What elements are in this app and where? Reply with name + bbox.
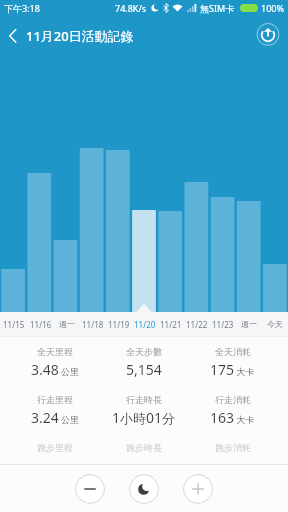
- button[interactable]: 週一: [236, 319, 262, 329]
- button[interactable]: 全天步數: [99, 337, 188, 379]
- button[interactable]: 11/22: [184, 319, 210, 330]
- button[interactable]: 週一: [54, 319, 80, 329]
- button[interactable]: 11/23: [210, 319, 236, 330]
- staticText: 163 大卡: [210, 408, 255, 427]
- button[interactable]: 11/21: [158, 319, 184, 330]
- staticText: 11/18: [82, 319, 104, 330]
- staticText: 週一: [59, 319, 75, 329]
- staticText: 全天里程: [37, 346, 73, 357]
- staticText: 74.8K/s: [115, 2, 147, 14]
- staticText: 3.24 公里: [31, 408, 80, 427]
- staticText: 跑步時長: [126, 442, 162, 453]
- button[interactable]: 全天消耗: [188, 337, 277, 379]
- button[interactable]: 今天: [262, 319, 288, 329]
- staticText: 11/16: [30, 319, 52, 330]
- button[interactable]: 全天里程: [11, 337, 99, 379]
- staticText: 今天: [267, 319, 283, 329]
- staticText: 行走里程: [37, 394, 73, 405]
- staticText: 跑步里程: [37, 442, 73, 453]
- staticText: 11/19: [108, 319, 130, 330]
- staticText: 無SIM卡: [200, 2, 235, 14]
- staticText: 全天步數: [126, 346, 162, 357]
- staticText: 11/21: [160, 319, 182, 330]
- button[interactable]: 行走時長: [99, 385, 188, 427]
- button[interactable]: 11/15: [0, 319, 27, 330]
- button[interactable]: 11/16: [27, 319, 54, 330]
- staticText: 全天消耗: [215, 346, 251, 357]
- button[interactable]: [0, 16, 26, 56]
- button[interactable]: [247, 16, 288, 56]
- button[interactable]: 11/19: [106, 319, 132, 330]
- staticText: 11/20: [134, 319, 156, 330]
- button[interactable]: [75, 474, 105, 504]
- button[interactable]: 11/20: [132, 319, 158, 330]
- button[interactable]: [183, 474, 213, 504]
- staticText: 行走時長: [126, 394, 162, 405]
- staticText: 下午3:18: [4, 2, 40, 14]
- button[interactable]: [129, 474, 159, 504]
- staticText: 週一: [241, 319, 257, 329]
- button[interactable]: 11/18: [80, 319, 106, 330]
- staticText: 1小時01分: [112, 408, 176, 427]
- staticText: 跑步消耗: [215, 442, 251, 453]
- staticText: 11/22: [186, 319, 208, 330]
- button[interactable]: 行走消耗: [188, 385, 277, 427]
- button[interactable]: 行走里程: [11, 385, 99, 427]
- staticText: 行走消耗: [215, 394, 251, 405]
- staticText: 11月20日活動記錄: [26, 27, 134, 45]
- staticText: 100%: [261, 2, 284, 14]
- staticText: 5,154: [126, 360, 162, 379]
- staticText: 175 大卡: [210, 360, 255, 379]
- staticText: 11/15: [3, 319, 25, 330]
- staticText: 3.48 公里: [31, 360, 80, 379]
- staticText: 11/23: [212, 319, 234, 330]
